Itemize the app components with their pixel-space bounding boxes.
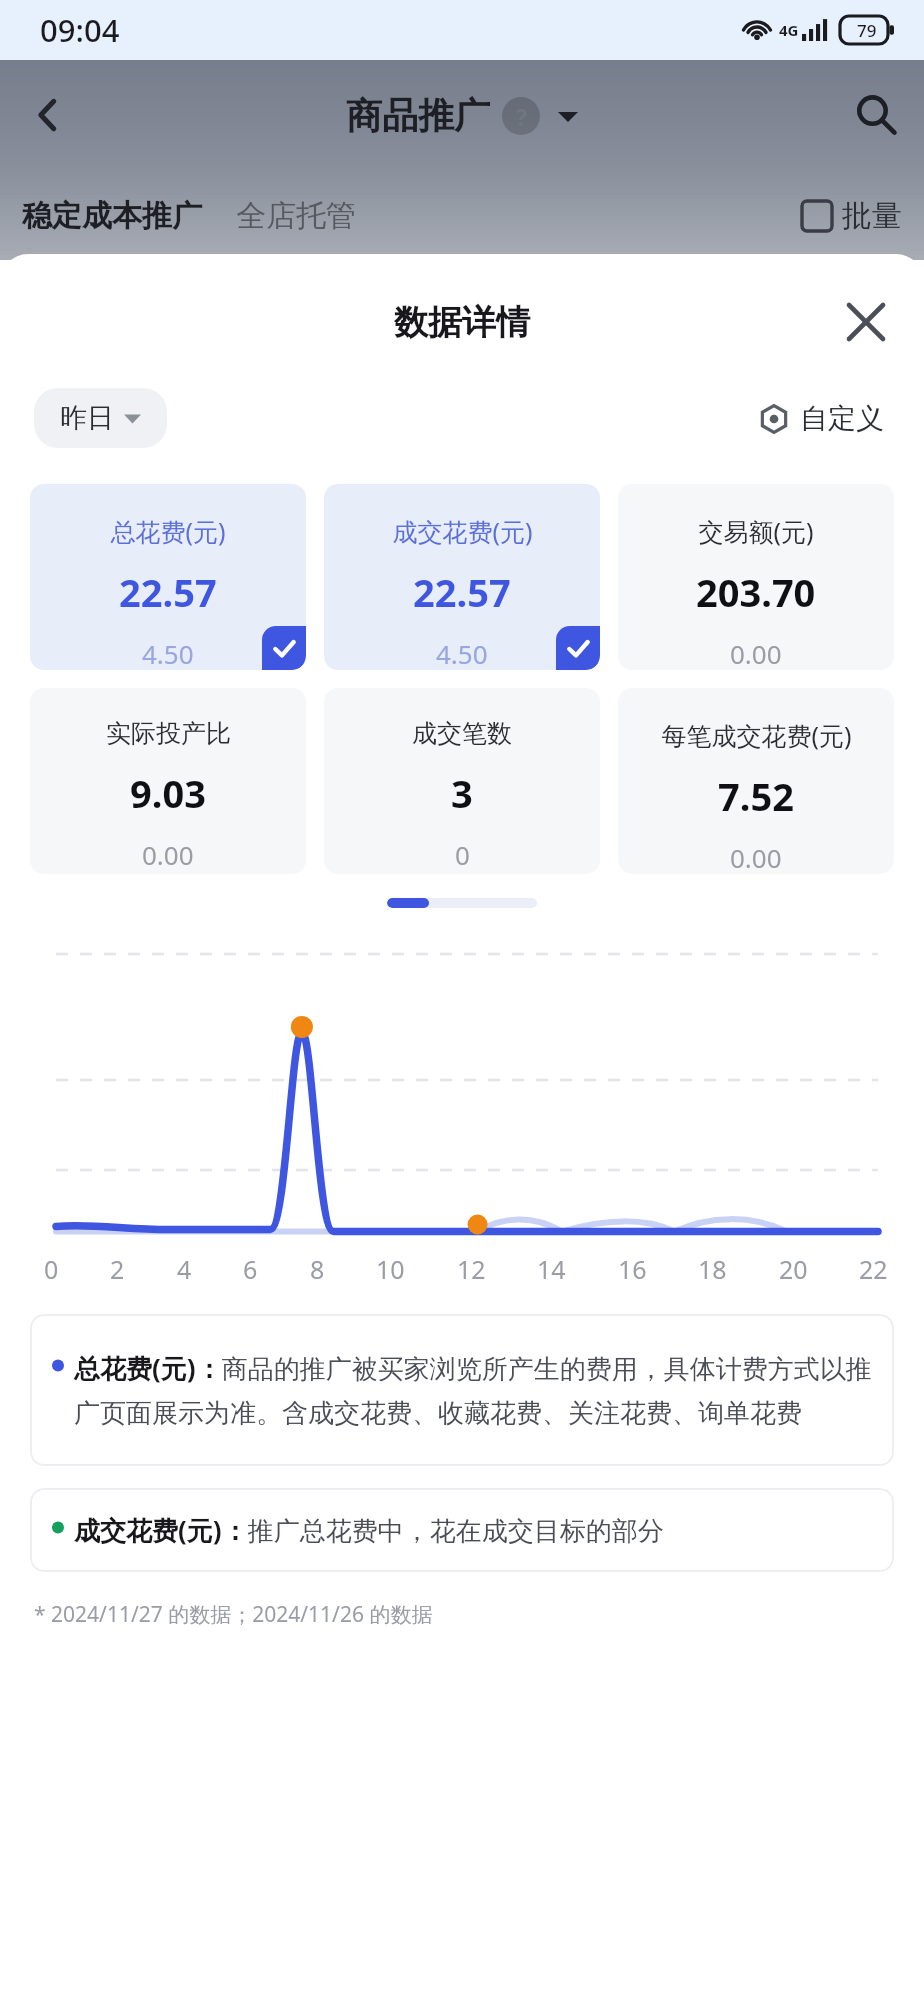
button[interactable]: Back xyxy=(0,60,96,170)
staticText: 6 xyxy=(243,1252,258,1286)
staticText: 交易额(元) xyxy=(698,514,814,548)
staticText: * 2024/11/27 的数据；2024/11/26 的数据 xyxy=(34,1600,433,1629)
staticText: 批量 xyxy=(842,197,902,235)
staticText: 总花费(元) xyxy=(110,514,226,548)
staticText: 成交花费(元) xyxy=(392,514,533,548)
staticText: 每笔成交花费(元) xyxy=(661,718,852,752)
button[interactable]: Close xyxy=(832,288,900,356)
staticText: 203.70 xyxy=(696,566,816,618)
button[interactable] xyxy=(558,106,578,126)
staticText: 0.00 xyxy=(730,840,782,874)
staticText: 4.50 xyxy=(142,636,194,670)
staticText: 0.00 xyxy=(142,837,194,872)
staticText: 22.57 xyxy=(119,566,217,618)
staticText: 0 xyxy=(455,837,470,872)
staticText: 14 xyxy=(537,1252,566,1286)
button[interactable]: 每笔成交花费(元) xyxy=(618,688,894,874)
button[interactable]: 成交花费(元)：推广总花费中，花在成交目标的部分 xyxy=(30,1488,894,1572)
staticText: 2 xyxy=(110,1252,125,1286)
button[interactable]: 稳定成本推广 xyxy=(22,197,202,235)
staticText: 20 xyxy=(779,1252,808,1286)
staticText: 22.57 xyxy=(413,566,511,618)
staticText: 自定义 xyxy=(800,401,884,436)
button[interactable]: 昨日 xyxy=(34,388,167,448)
staticText: 0 xyxy=(44,1252,59,1286)
staticText: 4 xyxy=(177,1252,192,1286)
button[interactable]: Search xyxy=(828,60,924,170)
button[interactable]: 交易额(元) xyxy=(618,484,894,670)
button[interactable]: 批量 xyxy=(802,197,902,235)
button[interactable]: 成交笔数 xyxy=(324,688,600,874)
staticText: 10 xyxy=(376,1252,405,1286)
staticText: ? xyxy=(516,101,527,132)
button[interactable]: 自定义 xyxy=(752,395,890,442)
staticText: 18 xyxy=(698,1252,727,1286)
staticText: 成交笔数 xyxy=(412,718,512,749)
staticText: 09:04 xyxy=(40,9,120,51)
staticText: 昨日 xyxy=(60,401,114,435)
button[interactable]: 实际投产比 xyxy=(30,688,306,874)
staticText: 79 xyxy=(857,19,877,42)
staticText: 8 xyxy=(310,1252,325,1286)
staticText: 0.00 xyxy=(730,636,782,670)
staticText: 4.50 xyxy=(436,636,488,670)
button[interactable]: 总花费(元) xyxy=(30,484,306,670)
staticText: 成交花费(元)：推广总花费中，花在成交目标的部分 xyxy=(74,1512,664,1548)
staticText: 22 xyxy=(859,1252,888,1286)
button[interactable]: Help xyxy=(502,97,540,135)
staticText: 数据详情 xyxy=(394,301,530,344)
staticText: 12 xyxy=(457,1252,486,1286)
staticText: 实际投产比 xyxy=(106,718,231,749)
button[interactable]: 总花费(元)：商品的推广被买家浏览所产生的费用，具体计费方式以推广页面展示为准。… xyxy=(30,1314,894,1466)
staticText: 16 xyxy=(618,1252,647,1286)
button[interactable]: 全店托管 xyxy=(236,197,356,235)
staticText: 总花费(元)：商品的推广被买家浏览所产生的费用，具体计费方式以推广页面展示为准。… xyxy=(74,1350,872,1430)
staticText: 4G xyxy=(779,20,799,40)
button[interactable]: 成交花费(元) xyxy=(324,484,600,670)
staticText: 3 xyxy=(451,767,473,819)
staticText: 7.52 xyxy=(718,770,794,822)
staticText: 9.03 xyxy=(130,767,206,819)
staticText: 商品推广 xyxy=(346,93,490,138)
